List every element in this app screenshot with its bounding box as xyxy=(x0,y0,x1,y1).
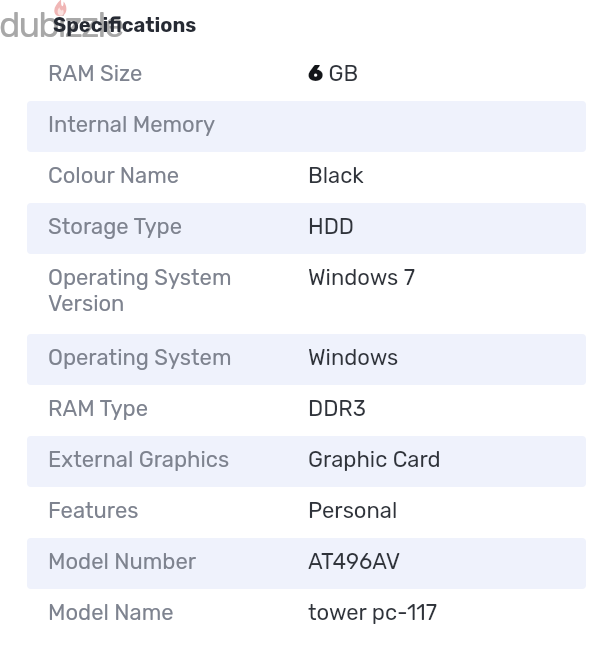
staticText: Specifications xyxy=(53,13,197,37)
staticText: RAM Type xyxy=(48,395,284,421)
button[interactable]: Operating System Version xyxy=(27,254,586,334)
staticText: Features xyxy=(48,497,284,523)
staticText: Personal xyxy=(308,497,398,523)
staticText: 6 GB xyxy=(308,60,359,86)
other: dubizzle flame logo xyxy=(52,0,68,17)
button[interactable]: Model Name xyxy=(27,589,586,640)
button[interactable]: Features xyxy=(27,487,586,538)
staticText: External Graphics xyxy=(48,446,284,472)
button[interactable]: Colour Name xyxy=(27,152,586,203)
button[interactable]: Operating System xyxy=(27,334,586,385)
staticText: DDR3 xyxy=(308,395,366,421)
staticText: tower pc-117 xyxy=(308,599,438,625)
staticText: RAM Size xyxy=(48,60,284,86)
button[interactable]: RAM Size xyxy=(27,50,586,101)
staticText: Operating System Version xyxy=(48,264,284,317)
staticText: Storage Type xyxy=(48,213,284,239)
staticText: AT496AV xyxy=(308,548,401,574)
staticText: Black xyxy=(308,162,364,188)
staticText: Operating System xyxy=(48,344,284,370)
staticText: Graphic Card xyxy=(308,446,441,472)
staticText: Model Number xyxy=(48,548,284,574)
staticText: Colour Name xyxy=(48,162,284,188)
staticText: Model Name xyxy=(48,599,284,625)
staticText: dubizzle xyxy=(0,3,123,46)
button[interactable]: Internal Memory xyxy=(27,101,586,152)
staticText: Windows xyxy=(308,344,399,370)
button[interactable]: External Graphics xyxy=(27,436,586,487)
button[interactable]: RAM Type xyxy=(27,385,586,436)
button[interactable]: Model Number xyxy=(27,538,586,589)
staticText: Internal Memory xyxy=(48,111,284,137)
staticText: HDD xyxy=(308,213,355,239)
staticText: Windows 7 xyxy=(308,264,415,290)
button[interactable]: Storage Type xyxy=(27,203,586,254)
